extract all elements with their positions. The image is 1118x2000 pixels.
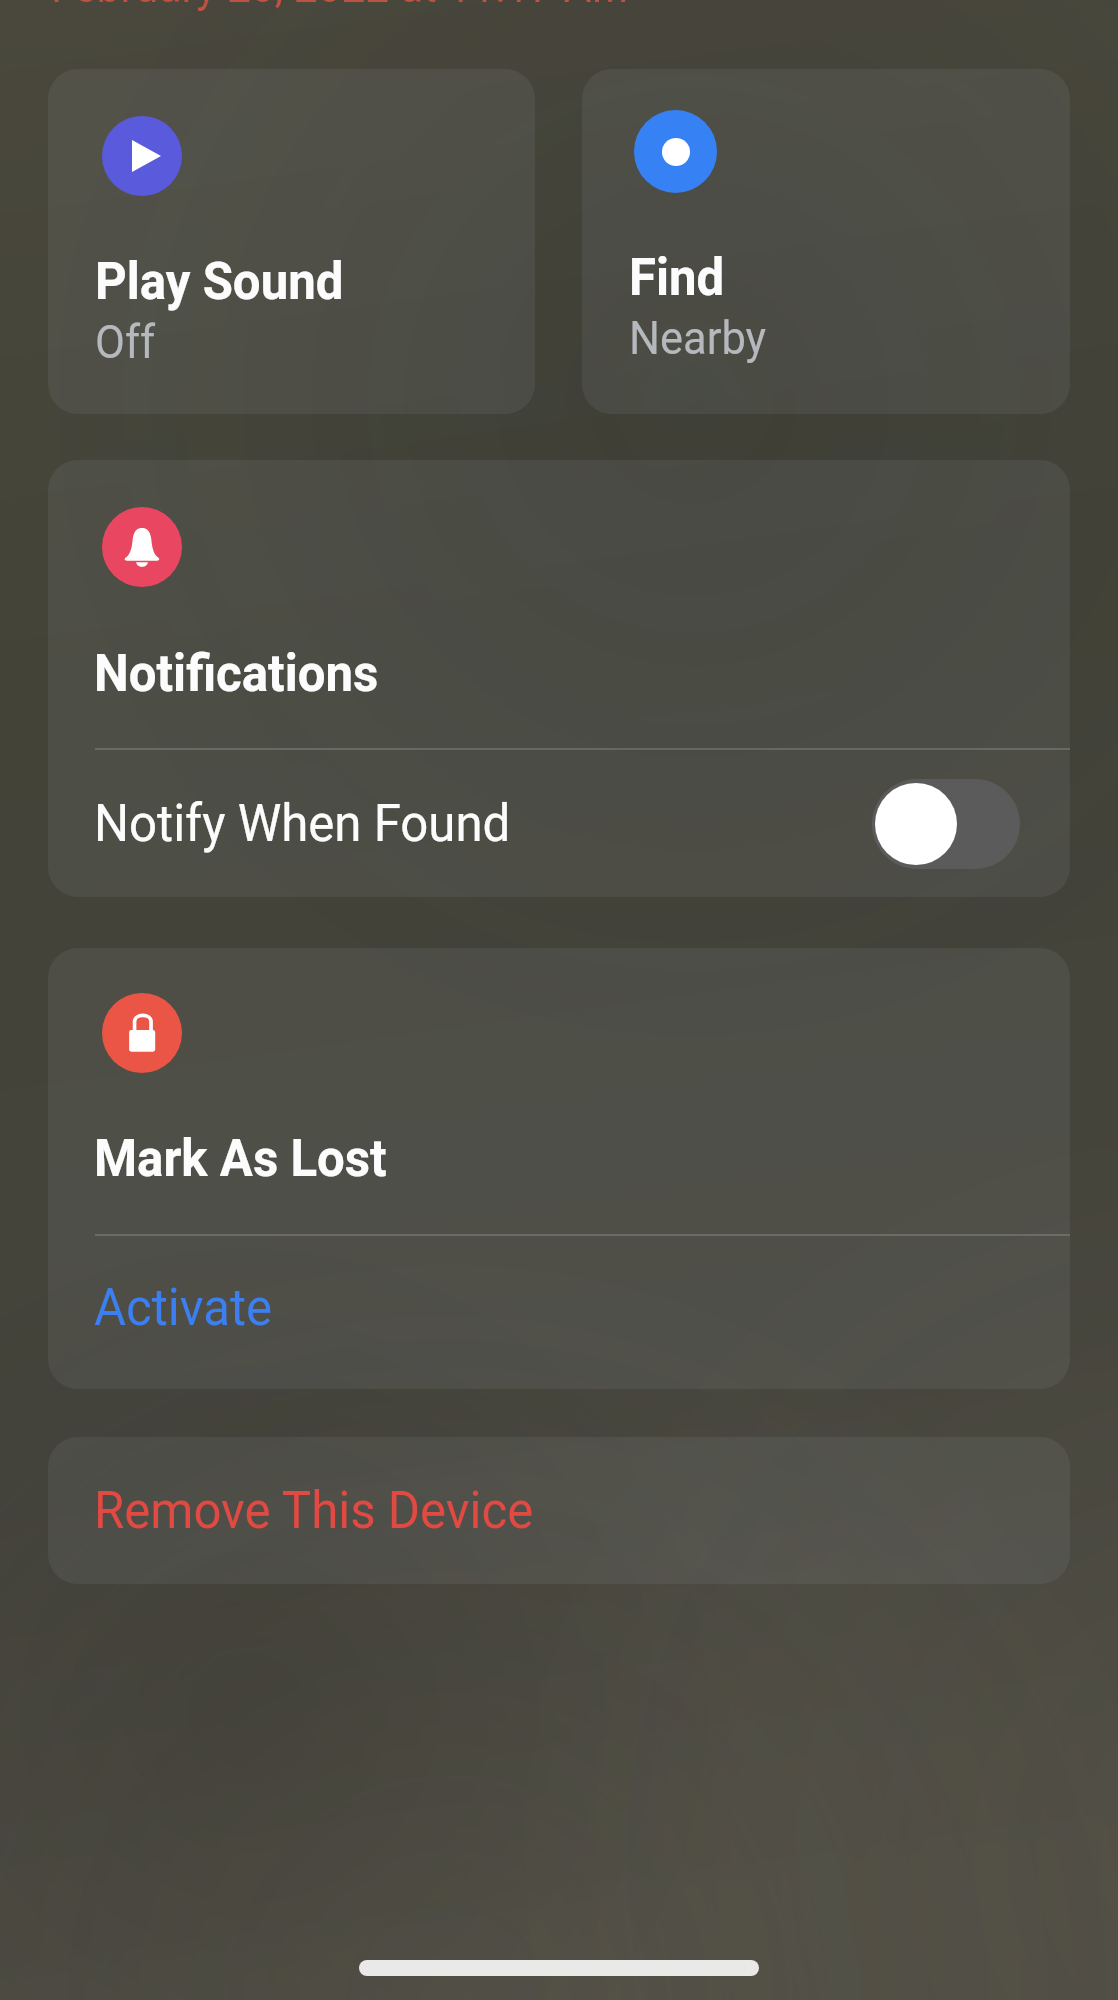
staticText: Find — [629, 247, 724, 308]
staticText: Play Sound — [95, 251, 343, 312]
button[interactable]: Notify When Found — [48, 750, 1070, 897]
button[interactable]: Notify when found — [872, 779, 1020, 869]
other: Play sound — [102, 116, 182, 196]
button[interactable]: Activate — [48, 1236, 1070, 1389]
other: Notifications — [102, 507, 182, 587]
staticText: Activate — [94, 1277, 273, 1338]
staticText: Notify When Found — [94, 793, 511, 854]
staticText: Remove This Device — [94, 1480, 533, 1541]
button[interactable]: Play sound — [48, 69, 535, 414]
button[interactable]: Find — [582, 69, 1070, 414]
staticText: Nearby — [629, 311, 767, 365]
other: Mark as lost — [102, 993, 182, 1073]
staticText: Off — [95, 315, 155, 369]
staticText: Notifications — [94, 643, 378, 704]
button[interactable]: Remove This Device — [48, 1437, 1070, 1584]
staticText: Mark As Lost — [94, 1128, 387, 1189]
other: Find — [634, 110, 717, 193]
staticText: February 20, 2022 at 11:17 AM — [51, 0, 629, 13]
